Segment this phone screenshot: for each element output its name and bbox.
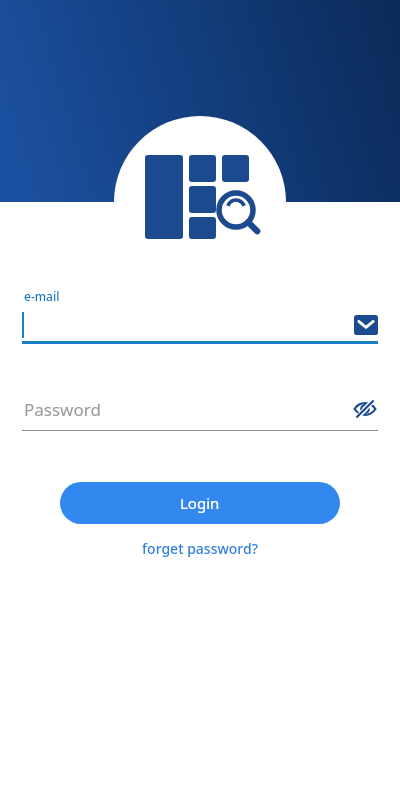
button[interactable]: E-mail <box>0 309 400 341</box>
button[interactable]: forget password? <box>134 536 266 561</box>
button[interactable]: E-mail <box>354 315 378 335</box>
button[interactable]: Password <box>0 394 400 424</box>
staticText: Login <box>180 493 220 513</box>
button[interactable]: Show password <box>352 396 378 422</box>
button[interactable]: Login <box>60 482 340 524</box>
staticText: e-mail <box>24 288 60 304</box>
staticText: Password <box>24 398 101 421</box>
